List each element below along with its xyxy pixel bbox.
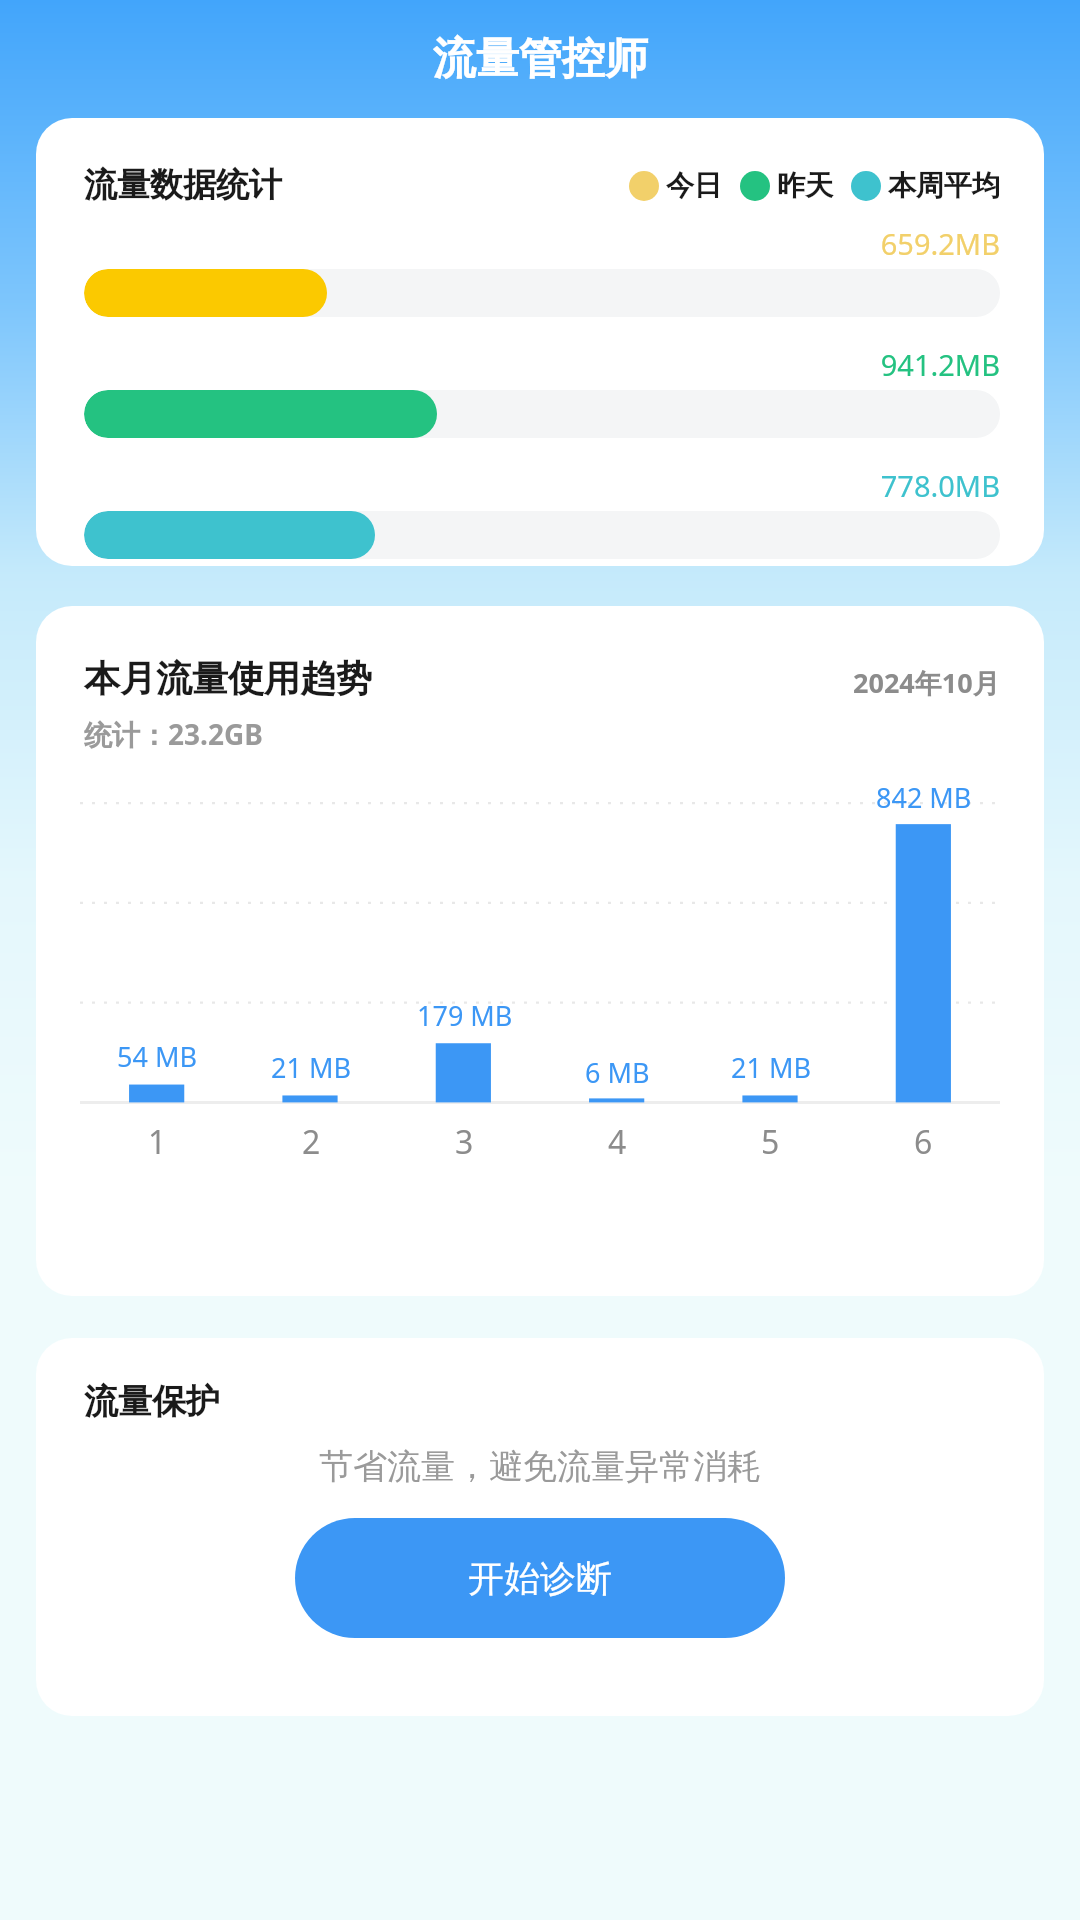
button[interactable]: 本周平均 xyxy=(851,168,1000,203)
staticText: 21 MB xyxy=(271,1049,351,1086)
staticText: 流量数据统计 xyxy=(84,164,282,206)
staticText: 开始诊断 xyxy=(468,1556,612,1601)
staticText: 6 xyxy=(914,1120,933,1164)
staticText: 2 xyxy=(302,1120,321,1164)
staticText: 4 xyxy=(608,1120,627,1164)
staticText: 6 MB xyxy=(585,1054,650,1091)
staticText: 659.2MB xyxy=(84,224,1000,263)
button[interactable]: 今日 xyxy=(629,168,722,203)
staticText: 昨天 xyxy=(777,168,833,203)
staticText: 节省流量，避免流量异常消耗 xyxy=(36,1445,1044,1488)
staticText: 778.0MB xyxy=(84,466,1000,505)
staticText: 流量管控师 xyxy=(433,32,648,86)
staticText: 1 xyxy=(148,1120,167,1164)
staticText: 54 MB xyxy=(117,1038,197,1075)
staticText: 3 xyxy=(455,1120,474,1164)
staticText: 2024年10月 xyxy=(853,664,1000,701)
staticText: 179 MB xyxy=(417,997,513,1034)
button[interactable]: 昨天 xyxy=(740,168,833,203)
staticText: 941.2MB xyxy=(84,345,1000,384)
staticText: 842 MB xyxy=(876,779,972,816)
staticText: 今日 xyxy=(666,168,722,203)
staticText: 21 MB xyxy=(731,1049,811,1086)
staticText: 统计：23.2GB xyxy=(84,715,263,753)
staticText: 5 xyxy=(761,1120,780,1164)
button[interactable]: 开始诊断 xyxy=(295,1518,785,1638)
staticText: 流量保护 xyxy=(84,1380,220,1423)
staticText: 本月流量使用趋势 xyxy=(84,656,372,701)
staticText: 本周平均 xyxy=(888,168,1000,203)
